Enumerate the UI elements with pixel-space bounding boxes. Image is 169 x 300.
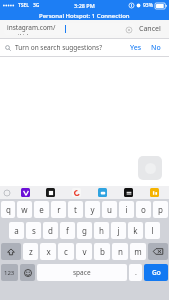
staticText: f — [66, 225, 69, 236]
button[interactable]: App shortcut — [141, 186, 167, 199]
staticText: j — [117, 225, 120, 236]
staticText: instagram.com/nurikidy — [7, 23, 65, 35]
button[interactable]: g — [77, 222, 92, 239]
button[interactable]: More apps — [0, 186, 13, 199]
button[interactable]: Personal Hotspot: 1 Connection — [0, 11, 169, 20]
staticText: h — [99, 225, 104, 236]
button[interactable]: z — [23, 243, 38, 260]
button[interactable]: App shortcut — [38, 186, 63, 199]
button[interactable]: i — [119, 201, 134, 218]
staticText: v — [82, 246, 87, 257]
staticText: w — [21, 204, 28, 215]
button[interactable]: 123 — [1, 264, 18, 281]
button[interactable]: b — [94, 243, 110, 260]
button[interactable]: r — [51, 201, 66, 218]
staticText: g — [82, 225, 87, 236]
button[interactable]: Cancel — [135, 21, 165, 37]
button[interactable]: v — [76, 243, 92, 260]
staticText: p — [158, 204, 163, 215]
button[interactable]: w — [17, 201, 32, 218]
button[interactable]: j — [111, 222, 126, 239]
button[interactable]: p — [153, 201, 168, 218]
staticText: TSEL — [18, 2, 30, 9]
button[interactable]: Emoji — [20, 264, 35, 281]
staticText: 3G — [33, 2, 40, 9]
button[interactable]: instagram.com/nurikidy — [4, 23, 135, 35]
staticText: k — [133, 225, 138, 236]
button[interactable]: . — [129, 264, 142, 281]
button[interactable]: No — [148, 40, 164, 56]
staticText: . — [135, 268, 137, 278]
staticText: m — [134, 246, 142, 257]
staticText: space — [73, 268, 91, 277]
button[interactable]: App shortcut — [63, 186, 89, 199]
staticText: i — [125, 204, 128, 215]
staticText: u — [107, 204, 112, 215]
button[interactable]: f — [60, 222, 75, 239]
staticText: q — [6, 204, 11, 215]
button[interactable]: Yes — [127, 40, 145, 56]
staticText: Cancel — [139, 24, 161, 34]
staticText: Personal Hotspot: 1 Connection — [39, 12, 130, 20]
staticText: Yes — [130, 43, 142, 53]
button[interactable]: Clear text — [125, 26, 132, 33]
staticText: y — [90, 204, 95, 215]
button[interactable]: t — [68, 201, 83, 218]
button[interactable]: e — [34, 201, 49, 218]
button[interactable]: Go — [144, 264, 168, 281]
staticText: n — [118, 246, 123, 257]
button[interactable]: o — [136, 201, 151, 218]
button[interactable]: a — [9, 222, 24, 239]
staticText: z — [29, 246, 33, 257]
button[interactable]: space — [37, 264, 127, 281]
button[interactable]: s — [26, 222, 41, 239]
staticText: r — [57, 204, 61, 215]
button[interactable]: App shortcut — [13, 186, 38, 199]
staticText: 123 — [4, 269, 15, 277]
button[interactable]: u — [102, 201, 117, 218]
button[interactable]: k — [128, 222, 143, 239]
button[interactable]: c — [58, 243, 74, 260]
staticText: e — [39, 204, 44, 215]
button[interactable]: Backspace — [148, 243, 168, 260]
button[interactable]: d — [43, 222, 58, 239]
staticText: 3:28 PM — [74, 2, 95, 9]
staticText: b — [100, 246, 105, 257]
button[interactable]: Shift — [1, 243, 21, 260]
button[interactable]: App shortcut — [115, 186, 141, 199]
staticText: Turn on search suggestions? — [15, 43, 102, 52]
staticText: o — [141, 204, 146, 215]
staticText: s — [32, 225, 36, 236]
staticText: d — [48, 225, 53, 236]
staticText: x — [46, 246, 51, 257]
staticText: c — [64, 246, 68, 257]
button[interactable]: x — [40, 243, 56, 260]
staticText: 93% — [143, 2, 153, 9]
button[interactable]: y — [85, 201, 100, 218]
button[interactable]: q — [1, 201, 15, 218]
button[interactable]: App shortcut — [89, 186, 115, 199]
button[interactable]: l — [145, 222, 160, 239]
staticText: No — [151, 43, 161, 53]
staticText: l — [151, 225, 154, 236]
staticText: Go — [152, 268, 161, 277]
staticText: t — [74, 204, 77, 215]
staticText: a — [14, 225, 19, 236]
button[interactable]: n — [112, 243, 128, 260]
button[interactable]: h — [94, 222, 109, 239]
button[interactable]: m — [130, 243, 146, 260]
